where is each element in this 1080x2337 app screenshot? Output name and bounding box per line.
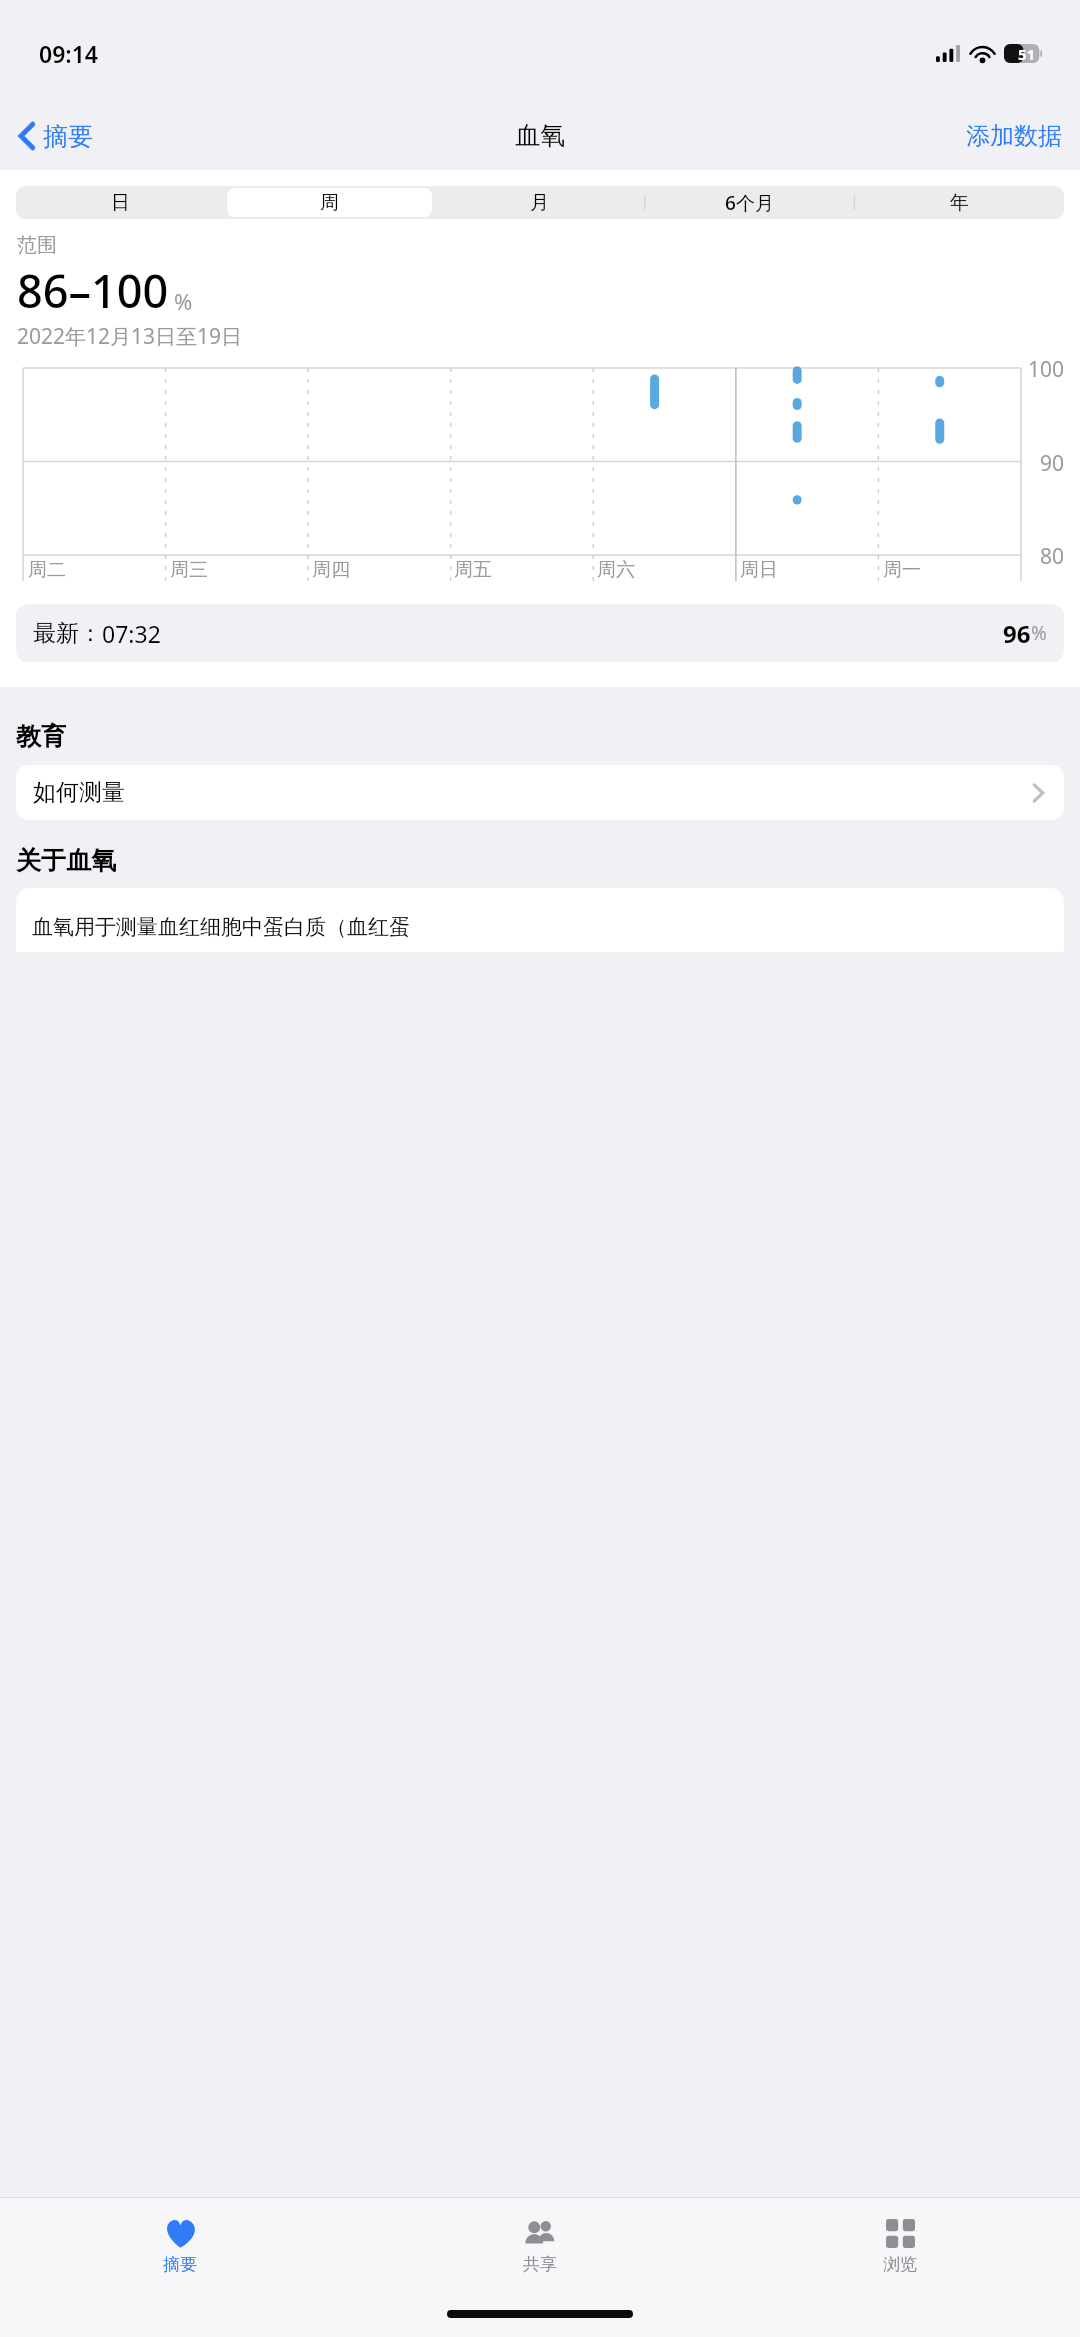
staticText: 摘要 (43, 121, 93, 152)
staticText: 范围 (17, 233, 57, 258)
button[interactable]: 日 (18, 188, 223, 217)
button[interactable]: 6个月 (646, 188, 852, 217)
staticText: 100 (1028, 355, 1065, 384)
button[interactable]: 周 (227, 188, 432, 217)
staticText: 07:32 (102, 618, 161, 649)
staticText: 80 (1040, 542, 1065, 571)
button[interactable]: 添加数据 (948, 115, 1080, 157)
staticText: 86–100 (17, 260, 169, 321)
button[interactable]: 最新： (16, 604, 1064, 662)
staticText: 周四 (312, 558, 350, 582)
staticText: 年 (950, 191, 969, 215)
staticText: 如何测量 (33, 778, 125, 807)
button[interactable]: 血氧用于测量血红细胞中蛋白质（血红蛋 (16, 888, 1064, 952)
staticText: % (1031, 620, 1047, 646)
staticText: 浏览 (883, 2254, 917, 2275)
button[interactable]: 月 (436, 188, 642, 217)
staticText: 96 (1003, 617, 1031, 650)
staticText: 周六 (597, 558, 635, 582)
staticText: 最新： (33, 619, 102, 648)
button[interactable]: 年 (856, 188, 1062, 217)
staticText: 周三 (170, 558, 208, 582)
staticText: 周日 (740, 558, 778, 582)
staticText: 周 (320, 191, 339, 215)
staticText: 共享 (523, 2254, 557, 2275)
button[interactable]: 如何测量 (16, 765, 1064, 820)
staticText: 血氧用于测量血红细胞中蛋白质（血红蛋 (32, 914, 410, 940)
button[interactable]: 共享 (360, 2198, 720, 2294)
staticText: 周一 (883, 558, 921, 582)
staticText: 血氧 (515, 120, 565, 151)
staticText: 09:14 (39, 38, 98, 69)
staticText: % (174, 286, 193, 316)
staticText: 2022年12月13日至19日 (17, 322, 243, 351)
button[interactable]: 摘要 (12, 116, 99, 156)
staticText: 摘要 (163, 2254, 197, 2275)
staticText: 6个月 (725, 190, 774, 216)
button[interactable]: 摘要 (0, 2198, 360, 2294)
button[interactable]: 浏览 (720, 2198, 1080, 2294)
staticText: 周五 (454, 558, 492, 582)
staticText: 日 (111, 191, 130, 215)
staticText: 教育 (16, 721, 66, 752)
staticText: 周二 (28, 558, 66, 582)
staticText: 90 (1040, 449, 1065, 478)
staticText: 月 (530, 191, 549, 215)
staticText: 关于血氧 (16, 845, 116, 876)
staticText: 51 (1018, 44, 1036, 64)
